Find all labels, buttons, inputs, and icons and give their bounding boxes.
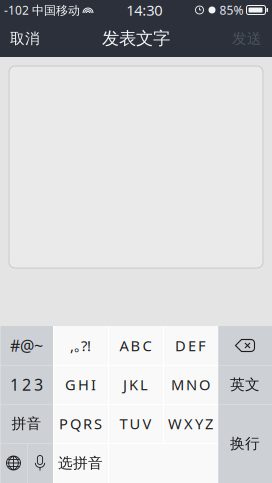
staticText: 1 2 3: [10, 374, 43, 395]
staticText: #@~: [10, 335, 43, 356]
staticText: 85%: [219, 2, 243, 18]
button[interactable]: ,｡?!: [53, 326, 108, 365]
button[interactable]: W X Y Z: [163, 404, 218, 443]
staticText: ,｡?!: [70, 336, 91, 355]
button[interactable]: 英文: [218, 365, 272, 404]
button[interactable]: A B C: [108, 326, 163, 365]
button[interactable]: 换行: [218, 404, 272, 483]
button[interactable]: D E F: [163, 326, 218, 365]
button[interactable]: Delete: [218, 326, 272, 365]
button[interactable]: M N O: [163, 365, 218, 404]
button[interactable]: G H I: [53, 365, 108, 404]
staticText: -102 中国移动: [4, 2, 80, 18]
button[interactable]: #@~: [0, 326, 53, 365]
staticText: 拼音: [11, 414, 41, 432]
staticText: A B C: [119, 336, 151, 355]
staticText: 发表文字: [102, 28, 170, 49]
staticText: P Q R S: [59, 414, 102, 433]
staticText: W X Y Z: [168, 414, 213, 433]
button[interactable]: 选拼音: [53, 443, 108, 483]
staticText: T U V: [119, 414, 151, 433]
button[interactable]: 发送: [223, 20, 271, 57]
button[interactable]: 取消: [1, 20, 49, 57]
staticText: G H I: [65, 375, 96, 394]
button[interactable]: P Q R S: [53, 404, 108, 443]
button[interactable]: Dictation: [27, 443, 53, 483]
staticText: M N O: [171, 375, 210, 394]
button[interactable]: 1 2 3: [0, 365, 53, 404]
staticText: 换行: [230, 434, 260, 452]
staticText: 取消: [10, 29, 40, 47]
staticText: 发送: [232, 29, 262, 47]
staticText: 英文: [230, 375, 260, 393]
staticText: D E F: [175, 336, 206, 355]
staticText: 14:30: [126, 0, 162, 20]
button[interactable]: T U V: [108, 404, 163, 443]
staticText: J K L: [123, 375, 148, 394]
button[interactable]: J K L: [108, 365, 163, 404]
button[interactable]: 拼音: [0, 404, 53, 443]
staticText: 选拼音: [58, 454, 103, 472]
button[interactable]: Switch keyboard: [0, 443, 27, 483]
